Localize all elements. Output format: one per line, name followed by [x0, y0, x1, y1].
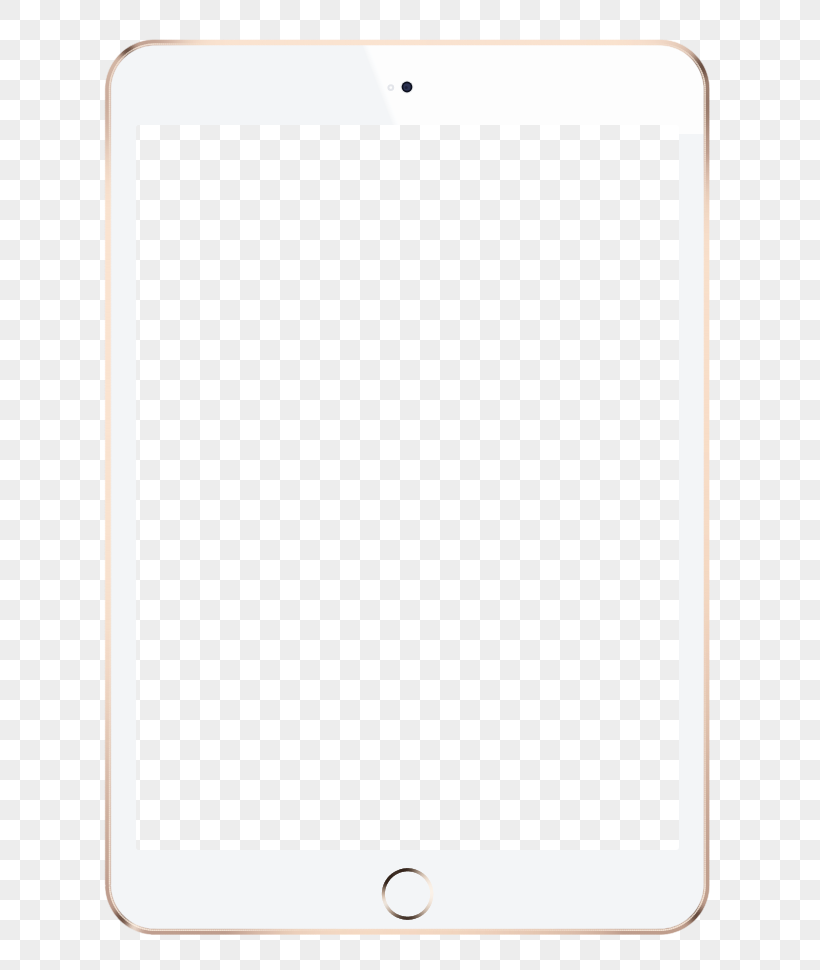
button[interactable]: Tablet device mockup — [0, 0, 820, 970]
